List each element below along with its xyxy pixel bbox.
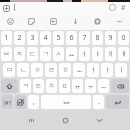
staticText: ㄱ (42, 50, 49, 58)
button[interactable]: ㅋ (20, 79, 31, 93)
staticText: ㅈ (16, 50, 23, 58)
staticText: 7 (82, 33, 87, 43)
button[interactable]: 5 (53, 31, 64, 45)
staticText: !#1 (3, 99, 12, 106)
button[interactable]: 7 (79, 31, 90, 45)
button[interactable]: ㅕ (79, 47, 90, 61)
staticText: ㅣ (118, 66, 125, 74)
staticText: 2 (17, 33, 22, 43)
staticText: 8 (95, 33, 100, 43)
staticText: ㅕ (81, 50, 88, 58)
button[interactable]: , (28, 95, 39, 109)
button[interactable]: Voice input (64, 13, 86, 30)
button[interactable]: Space (41, 95, 91, 109)
button[interactable]: Stickers (21, 13, 42, 30)
button[interactable]: Back (91, 112, 107, 128)
staticText: # (121, 3, 126, 13)
button[interactable]: Add attachment (2, 4, 10, 12)
staticText: ㅔ (120, 50, 127, 58)
button[interactable]: Home (57, 112, 73, 128)
button[interactable]: ㅏ (101, 63, 113, 77)
button[interactable]: ㅔ (118, 47, 129, 61)
button[interactable]: 4 (40, 31, 51, 45)
button[interactable]: ㅍ (59, 79, 70, 93)
button[interactable]: ㅈ (14, 47, 25, 61)
button[interactable]: ㅂ (1, 47, 12, 61)
button[interactable]: 2 (14, 31, 25, 45)
button[interactable]: 1 (1, 31, 12, 45)
staticText: 0 (121, 33, 126, 43)
staticText: ㄹ (48, 66, 55, 74)
button[interactable]: ㄹ (45, 63, 57, 77)
staticText: ㅊ (48, 82, 55, 90)
button[interactable]: Profile (108, 3, 117, 12)
staticText: ㄷ (29, 50, 36, 58)
button[interactable]: Recent apps (23, 112, 39, 128)
button[interactable]: ㅛ (66, 47, 77, 61)
staticText: 4 (43, 33, 48, 43)
button[interactable]: ㅓ (87, 63, 99, 77)
button[interactable]: Emoji (0, 13, 21, 30)
staticText: ㅐ (107, 50, 114, 58)
button[interactable]: ㅠ (72, 79, 83, 93)
button[interactable]: ㄴ (17, 63, 29, 77)
button[interactable]: ㅁ (3, 63, 15, 77)
button[interactable]: Enter (106, 95, 129, 109)
staticText: ㅁ (6, 66, 13, 74)
button[interactable]: ㄱ (40, 47, 51, 61)
button[interactable]: ㅇ (31, 63, 43, 77)
staticText: ㅛ (68, 50, 75, 58)
button[interactable]: 6 (66, 31, 77, 45)
button[interactable]: Backspace (111, 79, 129, 93)
button[interactable]: ㅌ (33, 79, 44, 93)
button[interactable]: Change language (15, 95, 26, 109)
button[interactable]: ㄷ (27, 47, 38, 61)
staticText: ㅍ (61, 82, 68, 90)
staticText: ㄴ (20, 66, 27, 74)
button[interactable]: ㅡ (98, 79, 109, 93)
staticText: 1 (4, 33, 9, 43)
staticText: ㅠ (74, 82, 81, 90)
staticText: ㅗ (76, 66, 83, 74)
button[interactable]: Clipboard (42, 13, 64, 30)
button[interactable]: ㅑ (92, 47, 103, 61)
staticText: 9 (108, 33, 113, 43)
staticText: 5 (56, 33, 61, 43)
button[interactable]: . (93, 95, 104, 109)
button[interactable]: ㅗ (73, 63, 85, 77)
staticText: ㅏ (104, 66, 111, 74)
button[interactable]: 8 (92, 31, 103, 45)
staticText: ㅜ (87, 82, 94, 90)
button[interactable]: More options (108, 13, 130, 30)
staticText: ㅑ (94, 50, 101, 58)
staticText: ㅎ (62, 66, 69, 74)
button[interactable]: 0 (118, 31, 129, 45)
staticText: . (98, 97, 100, 107)
button[interactable]: Shift (1, 79, 18, 93)
button[interactable]: ㅊ (46, 79, 57, 93)
button[interactable]: ㅅ (53, 47, 64, 61)
button[interactable]: 9 (105, 31, 116, 45)
button[interactable]: ㅎ (59, 63, 71, 77)
staticText: , (33, 97, 35, 107)
staticText: ㅇ (34, 66, 41, 74)
button[interactable]: !#1 (1, 95, 13, 109)
button[interactable]: ㅜ (85, 79, 96, 93)
staticText: ㅅ (55, 50, 62, 58)
staticText: 3 (30, 33, 35, 43)
staticText: ㅌ (35, 82, 42, 90)
button[interactable]: 3 (27, 31, 38, 45)
button[interactable]: ㅐ (105, 47, 116, 61)
staticText: ㅓ (90, 66, 97, 74)
staticText: 6 (69, 33, 74, 43)
button[interactable]: ㅣ (115, 63, 127, 77)
staticText: ㅂ (3, 50, 10, 58)
button[interactable]: Settings (86, 13, 108, 30)
staticText: ㅋ (22, 82, 29, 90)
staticText: ㅡ (100, 82, 107, 90)
